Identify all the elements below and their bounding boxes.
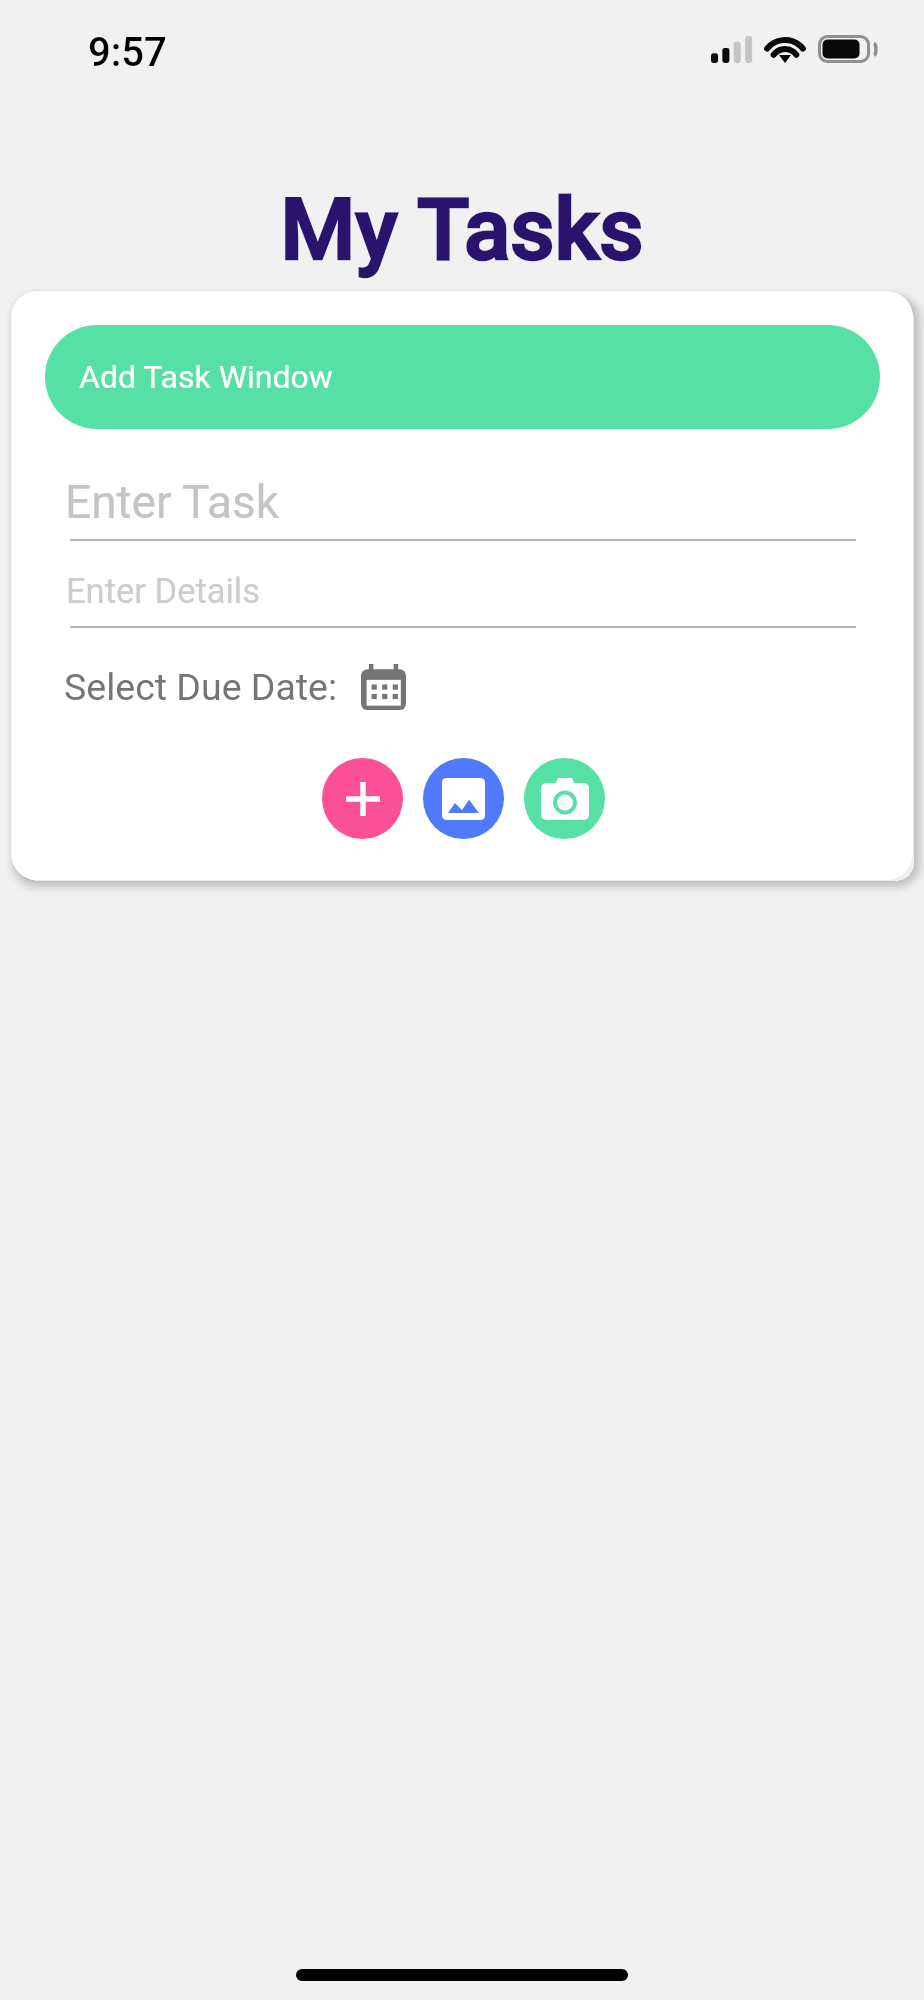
staticText: Add Task Window [79,358,333,396]
button[interactable]: Enter Details [70,561,856,628]
staticText: 9:57 [88,29,167,76]
staticText: Select Due Date: [64,665,338,709]
button[interactable]: Enter Task [70,461,856,541]
staticText: My Tasks [0,179,924,280]
button[interactable]: Add Task Window [45,325,880,429]
button[interactable]: Add task [322,758,403,839]
staticText: Enter Task [65,475,280,529]
button[interactable]: Pick image [423,758,504,839]
staticText: Enter Details [66,571,261,611]
button[interactable]: Take photo [524,758,605,839]
button[interactable]: Select due date [361,664,406,710]
